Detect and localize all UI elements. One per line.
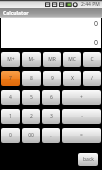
staticText: MC (68, 56, 76, 63)
button[interactable]: back (78, 153, 98, 166)
staticText: 00 (28, 132, 34, 139)
staticText: C (90, 56, 94, 63)
button[interactable]: M- (22, 52, 41, 67)
staticText: MR (48, 56, 56, 63)
staticText: + (80, 94, 83, 101)
staticText: 0 (94, 19, 99, 29)
button[interactable]: 0 (1, 128, 20, 143)
button[interactable]: MC (63, 52, 81, 67)
button[interactable]: 9 (43, 71, 61, 86)
button[interactable]: . (42, 128, 60, 143)
button[interactable]: 7 (1, 71, 20, 86)
button[interactable]: 00 (22, 128, 40, 143)
staticText: M- (28, 56, 35, 63)
button[interactable]: 8 (22, 71, 41, 86)
staticText: 5 (30, 94, 33, 101)
button[interactable]: 1 (1, 109, 20, 124)
staticText: = (80, 132, 83, 139)
staticText: 4 (9, 94, 12, 101)
staticText: X (71, 75, 74, 82)
staticText: M+ (7, 56, 15, 63)
staticText: 3 (50, 113, 53, 120)
staticText: back (83, 156, 94, 163)
staticText: 8 (30, 75, 33, 82)
button[interactable]: / (83, 71, 101, 86)
staticText: / (91, 75, 93, 82)
button[interactable]: 5 (22, 90, 40, 105)
button[interactable]: + (62, 90, 101, 105)
staticText: 1 (9, 113, 12, 120)
staticText: 7 (9, 75, 12, 82)
staticText: Calculator (3, 10, 29, 17)
staticText: . (50, 132, 52, 139)
button[interactable]: 4 (1, 90, 20, 105)
button[interactable]: 6 (42, 90, 60, 105)
button[interactable]: X (63, 71, 81, 86)
staticText: 2:44 PM (81, 1, 100, 8)
button[interactable]: MR (43, 52, 61, 67)
button[interactable]: M+ (1, 52, 20, 67)
staticText: 2 (30, 113, 33, 120)
staticText: - (81, 113, 83, 120)
button[interactable]: 3 (42, 109, 60, 124)
button[interactable]: - (62, 109, 101, 124)
staticText: 9 (51, 75, 54, 82)
staticText: 0 (94, 38, 99, 48)
staticText: 0 (9, 132, 12, 139)
button[interactable]: = (62, 128, 101, 143)
button[interactable]: 2 (22, 109, 40, 124)
staticText: 6 (50, 94, 53, 101)
button[interactable]: C (83, 52, 101, 67)
